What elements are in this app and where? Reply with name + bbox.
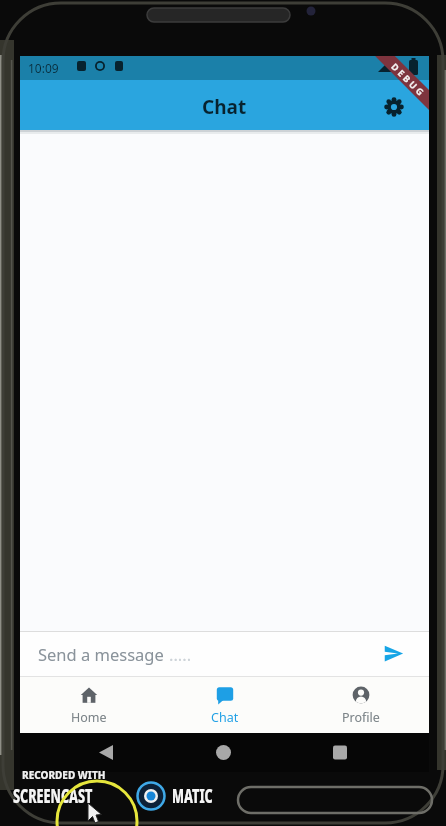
staticText: .....: [169, 643, 192, 665]
staticText: RECORDED WITH: [22, 768, 106, 782]
staticText: Send a message: [38, 643, 169, 665]
staticText: Profile: [342, 709, 380, 726]
staticText: Chat: [202, 94, 247, 120]
button[interactable]: Home: [20, 676, 157, 733]
button[interactable]: Chat: [157, 676, 293, 733]
staticText: DEBUG: [389, 60, 429, 100]
button[interactable]: Profile: [293, 676, 429, 733]
staticText: SCREENCAST: [13, 782, 93, 809]
button[interactable]: [384, 97, 404, 117]
staticText: Home: [71, 709, 107, 726]
staticText: Chat: [211, 709, 239, 726]
staticText: MATIC: [172, 782, 213, 809]
staticText: 10:09: [28, 60, 59, 76]
button[interactable]: [383, 643, 404, 664]
